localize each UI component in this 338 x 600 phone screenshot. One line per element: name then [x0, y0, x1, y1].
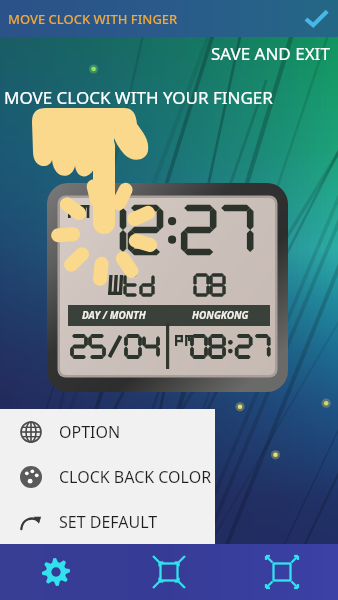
button[interactable]: SAVE AND EXIT [211, 42, 330, 65]
button[interactable]: DAY / MONTH [47, 183, 288, 392]
staticText: OPTION [59, 421, 121, 443]
staticText: MOVE CLOCK WITH FINGER [8, 10, 178, 28]
staticText: CLOCK BACK COLOR [59, 466, 212, 488]
staticText: DAY / MONTH [82, 308, 146, 322]
button[interactable]: Settings [0, 544, 112, 600]
button[interactable]: Confirm [302, 5, 330, 33]
button[interactable]: Shrink clock [112, 544, 225, 600]
staticText: MOVE CLOCK WITH YOUR FINGER [4, 86, 273, 109]
staticText: HONGKONG [192, 308, 249, 322]
button[interactable]: SET DEFAULT [0, 499, 215, 544]
button[interactable]: CLOCK BACK COLOR [0, 454, 215, 499]
button[interactable]: MOVE CLOCK WITH FINGER [0, 0, 338, 37]
button[interactable]: OPTION [0, 409, 215, 454]
staticText: SET DEFAULT [59, 511, 158, 533]
button[interactable]: Enlarge clock [225, 544, 338, 600]
